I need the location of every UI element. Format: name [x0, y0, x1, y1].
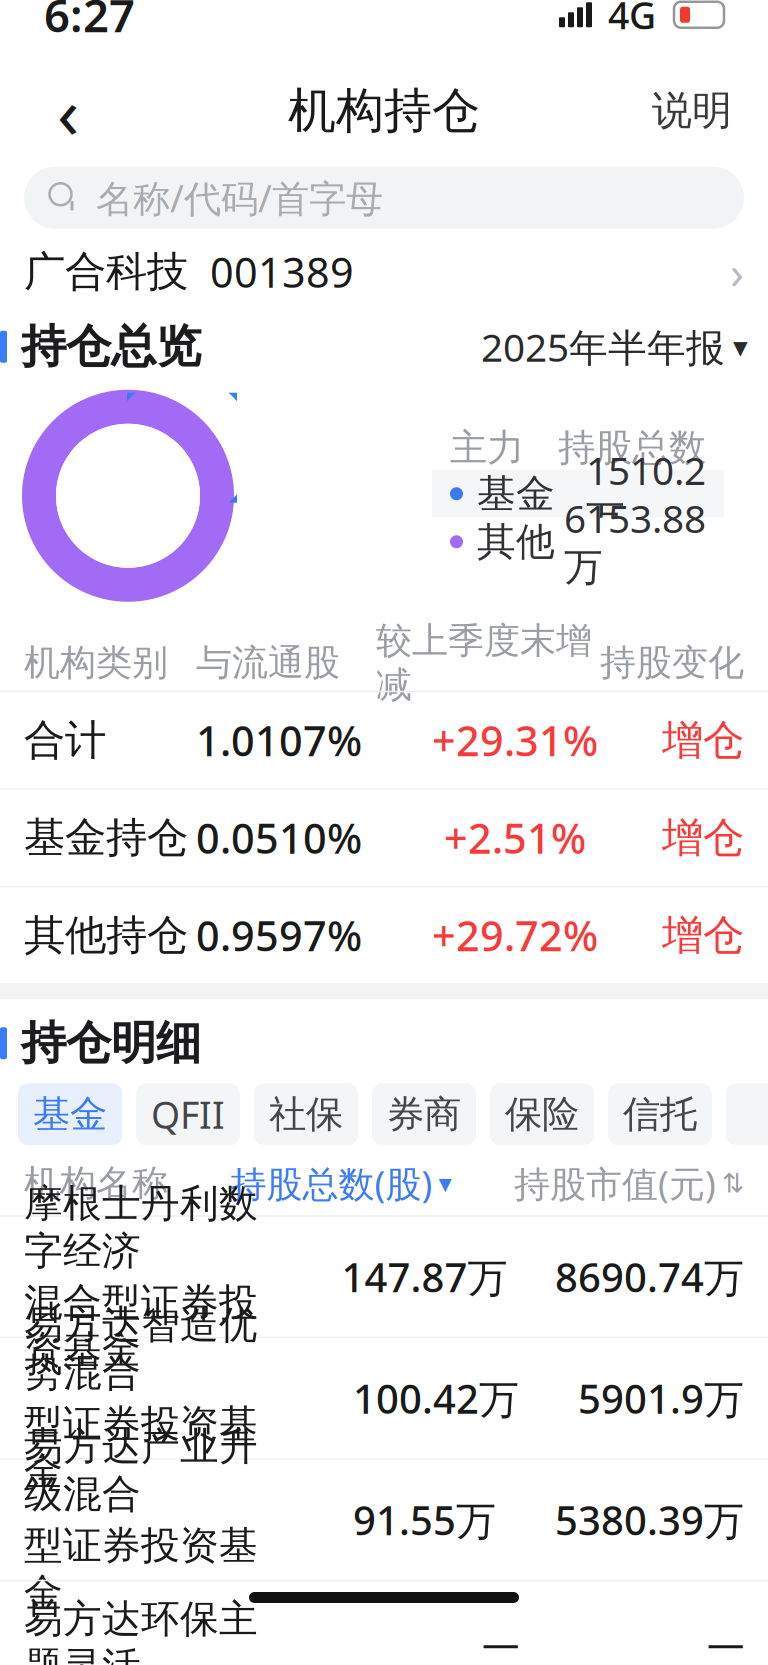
- staticText: 易方达智造优势混合: [24, 1301, 258, 1396]
- staticText: 易方达环保主题灵活: [24, 1595, 258, 1665]
- staticText: 持股变化: [600, 641, 744, 685]
- button[interactable]: 广合科技: [0, 233, 768, 311]
- staticText: 机构持仓: [288, 81, 480, 140]
- staticText: +29.72%: [432, 908, 598, 963]
- button[interactable]: 易方达产业升级混合: [0, 1460, 768, 1580]
- staticText: 社保: [269, 1091, 343, 1137]
- staticText: 券商: [387, 1091, 461, 1137]
- staticText: 其他持仓: [24, 910, 188, 961]
- staticText: +29.31%: [432, 713, 598, 768]
- staticText: 0.9597%: [196, 908, 362, 963]
- staticText: 增仓: [662, 910, 744, 961]
- staticText: 信托: [623, 1091, 697, 1137]
- staticText: 8690.74万: [555, 1250, 744, 1303]
- staticText: 增仓: [662, 715, 744, 766]
- button[interactable]: 社保: [254, 1083, 358, 1145]
- staticText: 易方达产业升级混合: [24, 1423, 258, 1518]
- staticText: ›: [730, 242, 744, 302]
- staticText: 100.42万: [353, 1372, 519, 1425]
- staticText: 1.0107%: [196, 713, 362, 768]
- staticText: —: [482, 1618, 519, 1665]
- staticText: 持股总数: [558, 425, 706, 471]
- staticText: ⇅: [722, 1168, 744, 1198]
- button[interactable]: 摩根士丹利数字经济: [0, 1217, 768, 1337]
- staticText: 5380.39万: [555, 1493, 744, 1546]
- button[interactable]: 保险: [490, 1083, 594, 1145]
- staticText: 持仓总览: [21, 319, 201, 375]
- staticText: 持股总数(股): [230, 1159, 432, 1207]
- button[interactable]: 基金: [18, 1083, 122, 1145]
- staticText: 147.87万: [341, 1250, 507, 1303]
- button[interactable]: 易方达智造优势混合: [0, 1338, 768, 1458]
- staticText: 基金: [477, 470, 555, 517]
- staticText: ▾: [438, 1168, 451, 1198]
- staticText: 6:27: [44, 0, 135, 45]
- staticText: 较上季度末增减: [376, 618, 592, 707]
- staticText: 4G: [608, 0, 656, 40]
- staticText: 基金: [33, 1091, 107, 1137]
- button[interactable]: 持股总数(股): [230, 1159, 451, 1207]
- staticText: —: [707, 1618, 744, 1665]
- staticText: 1510.2万: [586, 444, 706, 543]
- staticText: ▾: [733, 330, 748, 363]
- staticText: ‹: [57, 63, 79, 158]
- staticText: 说明: [652, 86, 732, 135]
- staticText: 持仓明细: [21, 1015, 201, 1071]
- staticText: 001389: [188, 244, 354, 299]
- staticText: +2.51%: [444, 810, 586, 865]
- staticText: 广合科技: [24, 246, 188, 297]
- staticText: 摩根士丹利数字经济: [24, 1180, 258, 1275]
- button[interactable]: 券商: [372, 1083, 476, 1145]
- staticText: 主力: [450, 425, 524, 471]
- button[interactable]: QFII: [136, 1083, 240, 1145]
- staticText: 型证券投资基金: [24, 1400, 258, 1495]
- staticText: 名称/代码/首字母: [96, 173, 383, 223]
- staticText: 91.55万: [353, 1493, 496, 1546]
- staticText: 0.0510%: [196, 810, 362, 865]
- staticText: 其他: [477, 518, 555, 565]
- button[interactable]: 说明: [644, 71, 740, 151]
- button[interactable]: Back: [28, 71, 108, 151]
- staticText: 机构名称: [24, 1161, 168, 1205]
- button[interactable]: 名称/代码/首字母: [24, 167, 744, 229]
- staticText: 持股市值(元): [514, 1159, 716, 1207]
- staticText: QFII: [151, 1089, 225, 1139]
- staticText: 合计: [24, 715, 106, 766]
- staticText: 6153.88万: [564, 492, 706, 591]
- staticText: 基金持仓: [24, 812, 188, 863]
- button[interactable]: 信托: [608, 1083, 712, 1145]
- button[interactable]: 2025年半年报: [481, 321, 768, 372]
- staticText: 5901.9万: [578, 1372, 744, 1425]
- staticText: 混合型证券投资基金: [24, 1279, 258, 1374]
- button[interactable]: 持股市值(元): [514, 1159, 744, 1207]
- staticText: 与流通股: [196, 641, 340, 685]
- staticText: 型证券投资基金: [24, 1522, 258, 1617]
- staticText: 保险: [505, 1091, 579, 1137]
- staticText: 增仓: [662, 812, 744, 863]
- staticText: 机构类别: [24, 641, 168, 685]
- staticText: 2025年半年报: [481, 321, 725, 372]
